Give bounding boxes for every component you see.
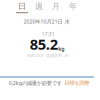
button[interactable]: 目標を調整 xyxy=(64,80,89,86)
staticText: 月 xyxy=(52,1,60,11)
staticText: 85.2 xyxy=(30,34,58,54)
staticText: BMI 27.8 体脂肪率 --% xyxy=(27,53,68,58)
button[interactable]: 年 xyxy=(65,1,81,13)
staticText: 17:31 xyxy=(41,30,54,38)
button[interactable]: 週 xyxy=(31,1,47,13)
staticText: 日 xyxy=(18,1,26,11)
staticText: 目標を調整 xyxy=(64,80,89,86)
staticText: kg xyxy=(58,45,64,52)
button[interactable]: 日 xyxy=(14,1,30,13)
staticText: 週 xyxy=(35,1,43,11)
button[interactable]: 月 xyxy=(48,1,64,13)
staticText: 2020年10月21日 水 xyxy=(23,18,69,25)
staticText: 年 xyxy=(69,1,77,11)
staticText: 0.2kgの減量が必要です xyxy=(9,79,62,86)
